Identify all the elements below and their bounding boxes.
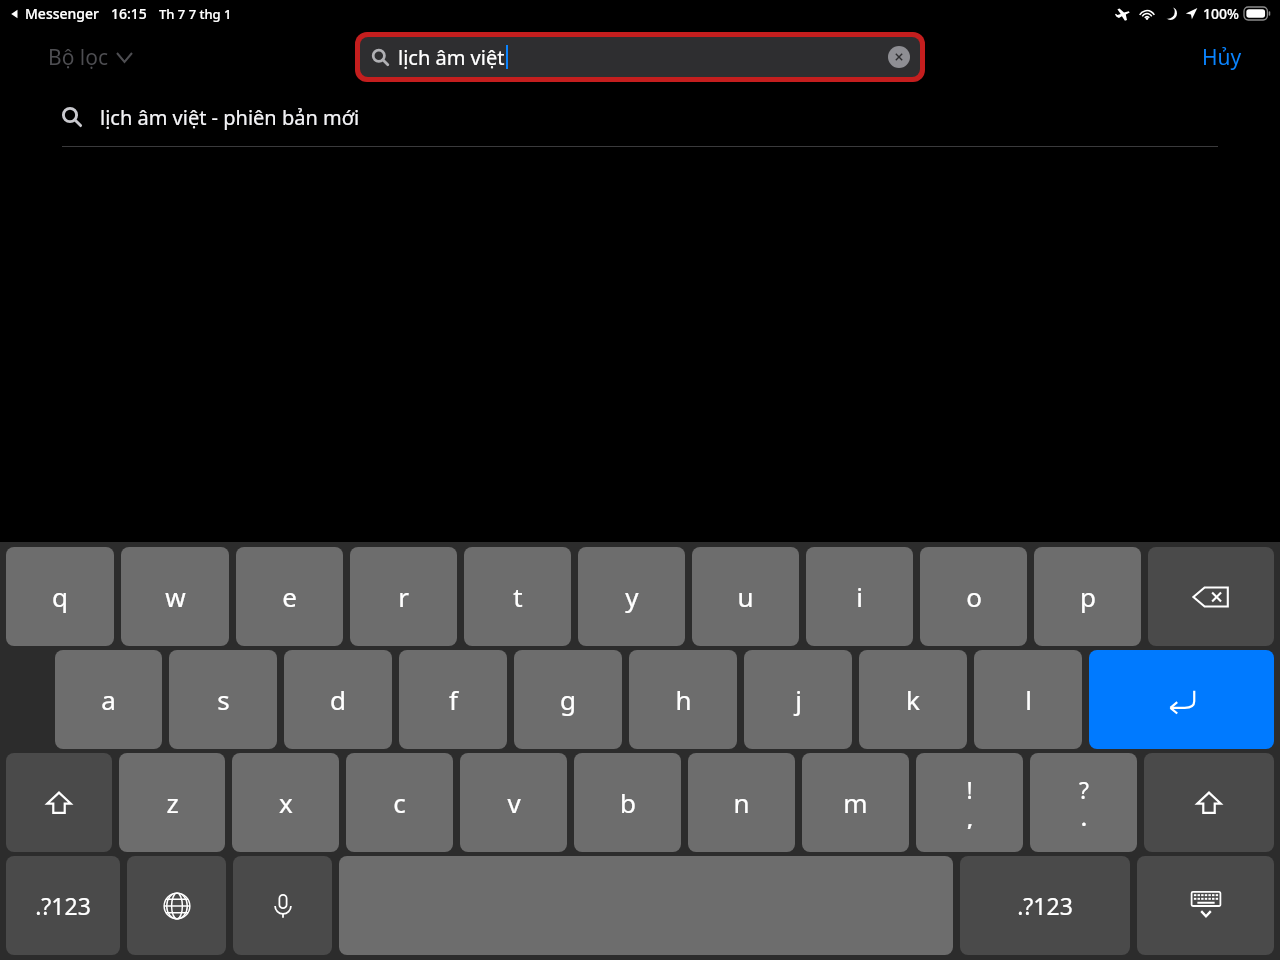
button[interactable]: p xyxy=(1034,547,1141,646)
button[interactable]: Bộ lọc xyxy=(48,43,132,72)
staticText: a xyxy=(101,682,116,717)
staticText: .?123 xyxy=(1017,890,1073,921)
button[interactable]: e xyxy=(236,547,343,646)
button[interactable]: o xyxy=(920,547,1027,646)
staticText: q xyxy=(52,579,68,614)
button[interactable]: n xyxy=(688,753,795,852)
button[interactable]: j xyxy=(744,650,852,749)
staticText: v xyxy=(507,785,521,820)
staticText: j xyxy=(795,682,802,717)
button[interactable]: q xyxy=(6,547,114,646)
staticText: u xyxy=(737,579,754,614)
button[interactable]: Hủy xyxy=(1194,37,1250,78)
button[interactable]: c xyxy=(346,753,453,852)
staticText: n xyxy=(733,785,750,820)
staticText: s xyxy=(217,682,230,717)
button[interactable]: Switch keyboard language xyxy=(127,856,226,955)
button[interactable]: k xyxy=(859,650,967,749)
button[interactable]: y xyxy=(578,547,685,646)
staticText: i xyxy=(856,579,863,614)
button[interactable]: l xyxy=(974,650,1082,749)
button[interactable]: Return xyxy=(1089,650,1274,749)
staticText: .?123 xyxy=(35,890,91,921)
staticText: c xyxy=(393,785,406,820)
staticText: m xyxy=(843,785,868,820)
staticText: f xyxy=(449,682,458,717)
button[interactable]: t xyxy=(464,547,571,646)
staticText: e xyxy=(282,579,297,614)
button[interactable]: Shift xyxy=(1144,753,1274,852)
staticText: ! xyxy=(966,774,973,805)
staticText: . xyxy=(1081,806,1087,832)
staticText: 16:15 xyxy=(111,4,147,23)
staticText: lịch âm việt xyxy=(398,44,505,71)
staticText: z xyxy=(166,785,179,820)
staticText: Bộ lọc xyxy=(48,43,109,72)
button[interactable]: d xyxy=(284,650,392,749)
button[interactable]: Hide keyboard xyxy=(1137,856,1274,955)
staticText: p xyxy=(1080,579,1096,614)
staticText: 100% xyxy=(1203,4,1239,23)
staticText: y xyxy=(625,579,639,614)
button[interactable]: ! xyxy=(916,753,1023,852)
staticText: Messenger xyxy=(25,4,99,23)
staticText: g xyxy=(560,682,576,717)
staticText: , xyxy=(967,806,973,832)
staticText: Th 7 7 thg 1 xyxy=(159,5,232,23)
staticText: o xyxy=(966,579,982,614)
button[interactable]: Dictation xyxy=(233,856,332,955)
staticText: k xyxy=(906,682,920,717)
button[interactable]: w xyxy=(121,547,229,646)
button[interactable]: r xyxy=(350,547,457,646)
button[interactable]: .?123 xyxy=(6,856,120,955)
button[interactable]: i xyxy=(806,547,913,646)
button[interactable]: lịch âm việt - phiên bản mới xyxy=(0,88,1280,146)
button[interactable]: g xyxy=(514,650,622,749)
staticText: t xyxy=(513,579,523,614)
button[interactable]: f xyxy=(399,650,507,749)
button[interactable]: b xyxy=(574,753,681,852)
button[interactable]: u xyxy=(692,547,799,646)
button[interactable]: z xyxy=(119,753,225,852)
button[interactable]: ? xyxy=(1030,753,1137,852)
staticText: d xyxy=(330,682,346,717)
staticText: r xyxy=(398,579,409,614)
staticText: l xyxy=(1025,682,1032,717)
button[interactable]: h xyxy=(629,650,737,749)
button[interactable]: lịch âm việt xyxy=(360,37,920,77)
button[interactable]: Clear text xyxy=(888,46,910,68)
button[interactable]: a xyxy=(55,650,162,749)
button[interactable]: Shift xyxy=(6,753,112,852)
staticText: ? xyxy=(1079,774,1089,805)
button[interactable]: m xyxy=(802,753,909,852)
button[interactable]: .?123 xyxy=(960,856,1130,955)
button[interactable]: Backspace xyxy=(1148,547,1274,646)
staticText: lịch âm việt - phiên bản mới xyxy=(100,104,360,131)
staticText: h xyxy=(675,682,692,717)
button[interactable]: s xyxy=(169,650,277,749)
staticText: w xyxy=(165,579,186,614)
staticText: Hủy xyxy=(1202,43,1242,72)
button[interactable]: v xyxy=(460,753,567,852)
button[interactable]: x xyxy=(232,753,339,852)
staticText: x xyxy=(279,785,293,820)
staticText: b xyxy=(620,785,636,820)
